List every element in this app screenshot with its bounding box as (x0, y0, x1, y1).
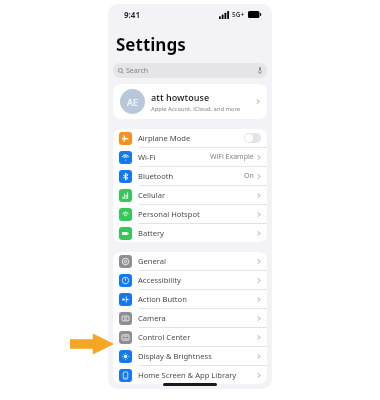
staticText: Bluetooth (138, 171, 174, 181)
button[interactable]: Wi-Fi (113, 148, 267, 166)
staticText: Apple Account, iCloud, and more (151, 105, 240, 113)
button[interactable]: Display & Brightness (113, 347, 267, 365)
other: Pointer arrow to Control Center (70, 332, 114, 356)
staticText: Wi-Fi (138, 152, 156, 162)
staticText: WiFi Example (210, 152, 254, 162)
staticText: Camera (138, 313, 166, 323)
button[interactable]: Cellular (113, 186, 267, 204)
button[interactable]: Bluetooth (113, 167, 267, 185)
button[interactable]: Home Screen & App Library (113, 366, 267, 384)
staticText: Control Center (138, 332, 191, 342)
staticText: Airplane Mode (138, 133, 191, 143)
button[interactable]: Airplane Mode (113, 129, 267, 147)
button[interactable]: Control Center (113, 328, 267, 346)
staticText: Display & Brightness (138, 351, 212, 361)
staticText: Settings (116, 33, 186, 56)
staticText: AE (127, 96, 138, 108)
button[interactable] (244, 133, 261, 143)
button[interactable]: Camera (113, 309, 267, 327)
staticText: General (138, 256, 166, 266)
button[interactable]: Personal Hotspot (113, 205, 267, 223)
button[interactable]: AE (113, 84, 267, 119)
staticText: Cellular (138, 190, 166, 200)
staticText: Battery (138, 228, 164, 238)
staticText: att howtouse (151, 91, 210, 103)
button[interactable]: Battery (113, 224, 267, 242)
staticText: Personal Hotspot (138, 209, 200, 219)
button[interactable]: Action Button (113, 290, 267, 308)
button[interactable]: Accessibility (113, 271, 267, 289)
button[interactable]: General (113, 252, 267, 270)
staticText: Home Screen & App Library (138, 370, 237, 380)
staticText: 9:41 (124, 9, 140, 20)
staticText: Accessibility (138, 275, 181, 285)
staticText: On (244, 171, 254, 181)
staticText: Action Button (138, 294, 187, 304)
staticText: Search (126, 66, 149, 76)
staticText: 5G+ (232, 10, 245, 19)
button[interactable]: Search (113, 63, 267, 78)
